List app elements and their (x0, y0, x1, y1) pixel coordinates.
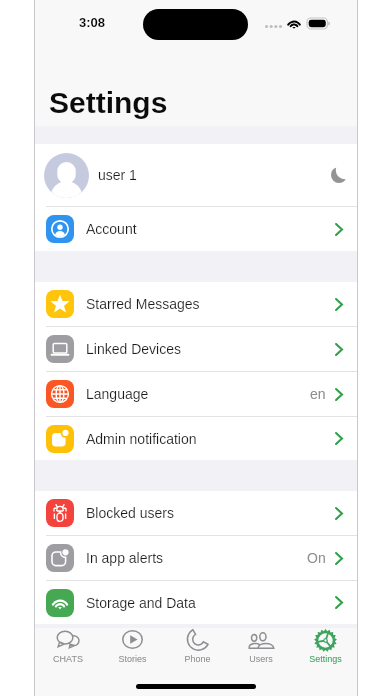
staticText: Starred Messages (86, 296, 200, 312)
button[interactable]: Starred Messages (35, 282, 357, 326)
button[interactable]: Users (229, 628, 293, 668)
button[interactable]: user 1 (35, 144, 357, 206)
staticText: en (310, 386, 326, 402)
button[interactable]: Linked Devices (35, 327, 357, 371)
staticText: Stories (118, 654, 147, 664)
button[interactable]: Storage and Data (35, 581, 357, 624)
staticText: Account (86, 221, 137, 237)
button[interactable]: Admin notification (35, 417, 357, 460)
button[interactable]: Account (35, 207, 357, 251)
staticText: 3:08 (79, 15, 106, 30)
staticText: Linked Devices (86, 341, 181, 357)
button[interactable]: Blocked users (35, 491, 357, 535)
button[interactable]: In app alerts (35, 536, 357, 580)
staticText: Language (86, 386, 149, 402)
staticText: Settings (49, 86, 168, 120)
staticText: Settings (309, 654, 342, 664)
staticText: Admin notification (86, 431, 197, 447)
button[interactable]: Phone (165, 628, 229, 668)
staticText: Storage and Data (86, 595, 196, 611)
button[interactable]: Stories (100, 628, 165, 668)
staticText: CHATS (53, 654, 83, 664)
button[interactable]: CHATS (35, 628, 100, 668)
staticText: Phone (184, 654, 211, 664)
staticText: Users (249, 654, 273, 664)
button[interactable]: Settings (293, 628, 357, 668)
button[interactable]: Language (35, 372, 357, 416)
staticText: On (307, 550, 326, 566)
staticText: user 1 (98, 167, 137, 183)
other: Dark mode (331, 167, 347, 183)
staticText: In app alerts (86, 550, 164, 566)
staticText: Blocked users (86, 505, 174, 521)
